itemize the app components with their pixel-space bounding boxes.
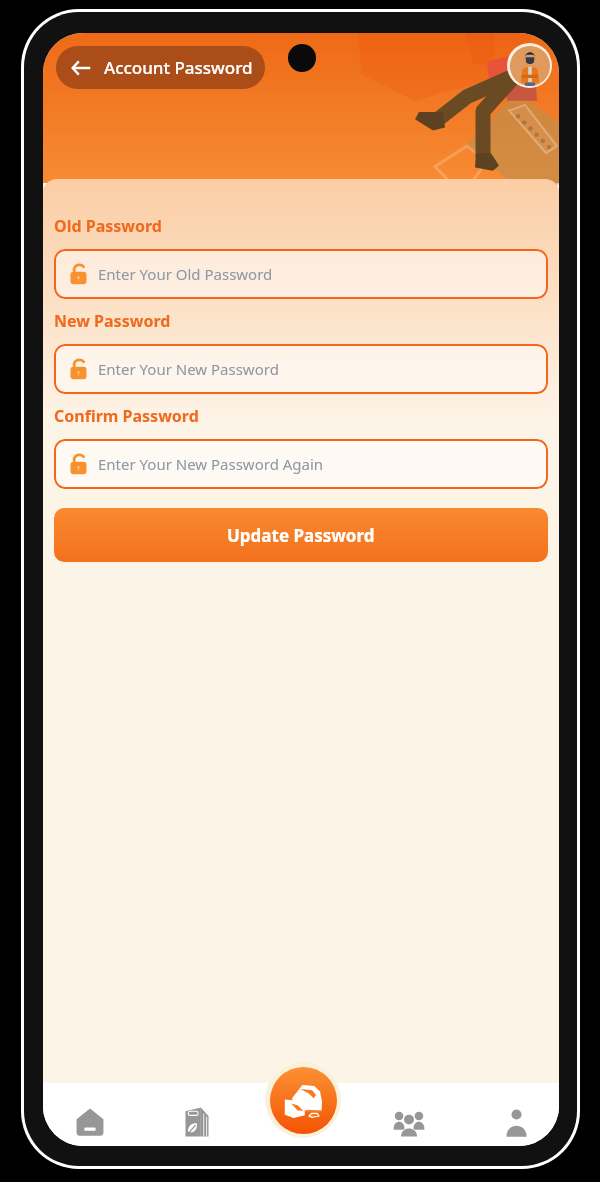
button[interactable]: Enter Your Old Password: [54, 249, 548, 299]
staticText: Enter Your Old Password: [98, 264, 273, 284]
staticText: Account Password: [104, 56, 253, 79]
button[interactable]: Add: [265, 1062, 341, 1138]
button[interactable]: Enter Your New Password Again: [54, 439, 548, 489]
button[interactable]: Community: [362, 1083, 456, 1146]
staticText: Enter Your New Password Again: [98, 454, 324, 474]
button[interactable]: Account Password: [56, 46, 265, 89]
button[interactable]: Products: [150, 1083, 244, 1146]
staticText: New Password: [54, 310, 171, 332]
button[interactable]: Profile: [507, 43, 552, 88]
button[interactable]: Enter Your New Password: [54, 344, 548, 394]
staticText: Enter Your New Password: [98, 359, 279, 379]
button[interactable]: Profile: [469, 1083, 559, 1146]
staticText: Old Password: [54, 215, 162, 237]
button[interactable]: Update Password: [54, 508, 548, 562]
staticText: Update Password: [227, 524, 375, 547]
button[interactable]: Home: [43, 1083, 137, 1146]
staticText: Confirm Password: [54, 405, 199, 427]
